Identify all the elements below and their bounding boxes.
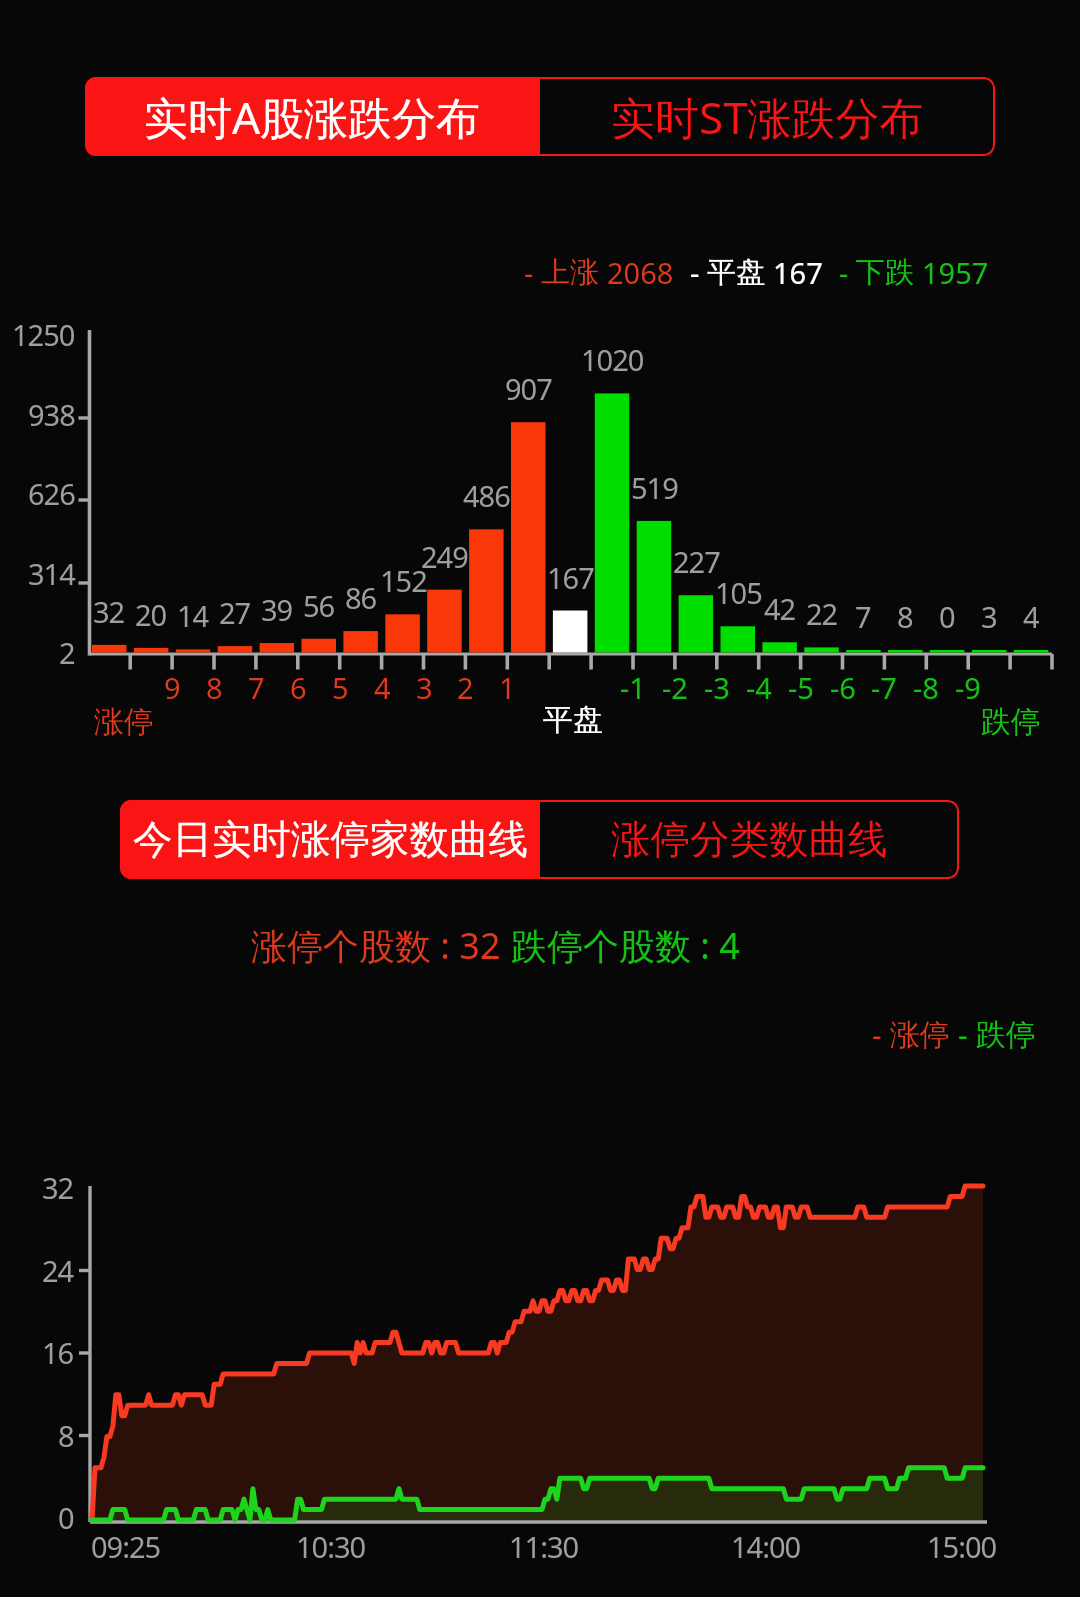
staticText: 249 (421, 537, 468, 576)
staticText: 跌停 (976, 1016, 1036, 1054)
staticText: 227 (673, 542, 720, 581)
staticText: 519 (631, 468, 678, 507)
staticText: 20 (135, 595, 167, 634)
staticText: -2 (662, 668, 688, 707)
staticText: - (958, 1014, 976, 1055)
staticText: 涨停分类数曲线 (611, 815, 888, 865)
staticText: 24 (42, 1251, 74, 1290)
staticText: 39 (261, 590, 293, 629)
staticText: 14:00 (731, 1527, 801, 1566)
staticText: 14 (177, 596, 209, 635)
staticText: 15:00 (927, 1527, 997, 1566)
staticText: 涨停个股数 : 32 (251, 921, 501, 970)
staticText: 上涨 (541, 254, 599, 291)
button[interactable]: 实时ST涨跌分布 (540, 77, 995, 156)
staticText: 涨停 (94, 703, 154, 741)
staticText: 1250 (12, 315, 75, 354)
button[interactable]: 今日实时涨停家数曲线 (120, 800, 540, 879)
staticText: 152 (380, 561, 427, 600)
staticText: 314 (28, 554, 75, 593)
staticText: 907 (505, 369, 552, 408)
staticText: 7 (248, 668, 265, 707)
staticText: 167 (773, 253, 823, 292)
staticText: 8 (897, 597, 913, 636)
staticText: 22 (806, 594, 838, 633)
staticText: 32 (93, 592, 125, 631)
staticText: 56 (303, 586, 335, 625)
staticText: 105 (715, 573, 762, 612)
staticText: 实时ST涨跌分布 (611, 87, 924, 147)
staticText: 16 (42, 1333, 74, 1372)
staticText: -4 (746, 668, 772, 707)
staticText: 9 (164, 668, 181, 707)
staticText: - (690, 253, 707, 292)
staticText: -7 (871, 668, 897, 707)
staticText: 4 (1023, 597, 1039, 636)
staticText: - (872, 1014, 890, 1055)
staticText: 2068 (607, 253, 674, 292)
staticText: 涨停 (890, 1016, 950, 1054)
staticText: 8 (58, 1416, 74, 1455)
staticText: - (839, 253, 856, 292)
staticText: 实时A股涨跌分布 (144, 87, 481, 147)
staticText: 2 (59, 633, 75, 672)
staticText: 0 (58, 1498, 74, 1537)
staticText: 938 (28, 395, 75, 434)
staticText: 1020 (581, 340, 644, 379)
staticText: 7 (855, 597, 871, 636)
staticText: -1 (620, 668, 646, 707)
staticText: 32 (42, 1168, 74, 1207)
staticText: 0 (939, 597, 955, 636)
staticText: 下跌 (856, 254, 914, 291)
staticText: 486 (463, 476, 510, 515)
staticText: 09:25 (91, 1527, 161, 1566)
button[interactable]: 涨停分类数曲线 (540, 800, 959, 879)
staticText: 10:30 (296, 1527, 366, 1566)
button[interactable]: 实时A股涨跌分布 (85, 77, 540, 156)
staticText: 27 (219, 593, 251, 632)
staticText: 626 (28, 474, 75, 513)
staticText: 3 (981, 597, 997, 636)
staticText: -8 (913, 668, 939, 707)
staticText: 167 (547, 558, 594, 597)
staticText: 86 (345, 578, 377, 617)
staticText: 平盘 (543, 701, 603, 739)
staticText: 2 (457, 668, 474, 707)
staticText: - (524, 253, 541, 292)
staticText: 8 (206, 668, 223, 707)
staticText: -5 (788, 668, 814, 707)
staticText: -9 (955, 668, 981, 707)
staticText: 6 (290, 668, 307, 707)
staticText: 跌停 (981, 703, 1041, 741)
staticText: -3 (704, 668, 730, 707)
staticText: 跌停个股数 : 4 (511, 921, 740, 970)
staticText: 1957 (922, 253, 989, 292)
staticText: 3 (416, 668, 433, 707)
staticText: 今日实时涨停家数曲线 (133, 815, 528, 865)
staticText: 平盘 (707, 254, 765, 291)
staticText: 4 (374, 668, 391, 707)
staticText: -6 (830, 668, 856, 707)
staticText: 42 (764, 589, 796, 628)
staticText: 11:30 (509, 1527, 579, 1566)
staticText: 5 (332, 668, 349, 707)
staticText: 1 (499, 668, 516, 707)
